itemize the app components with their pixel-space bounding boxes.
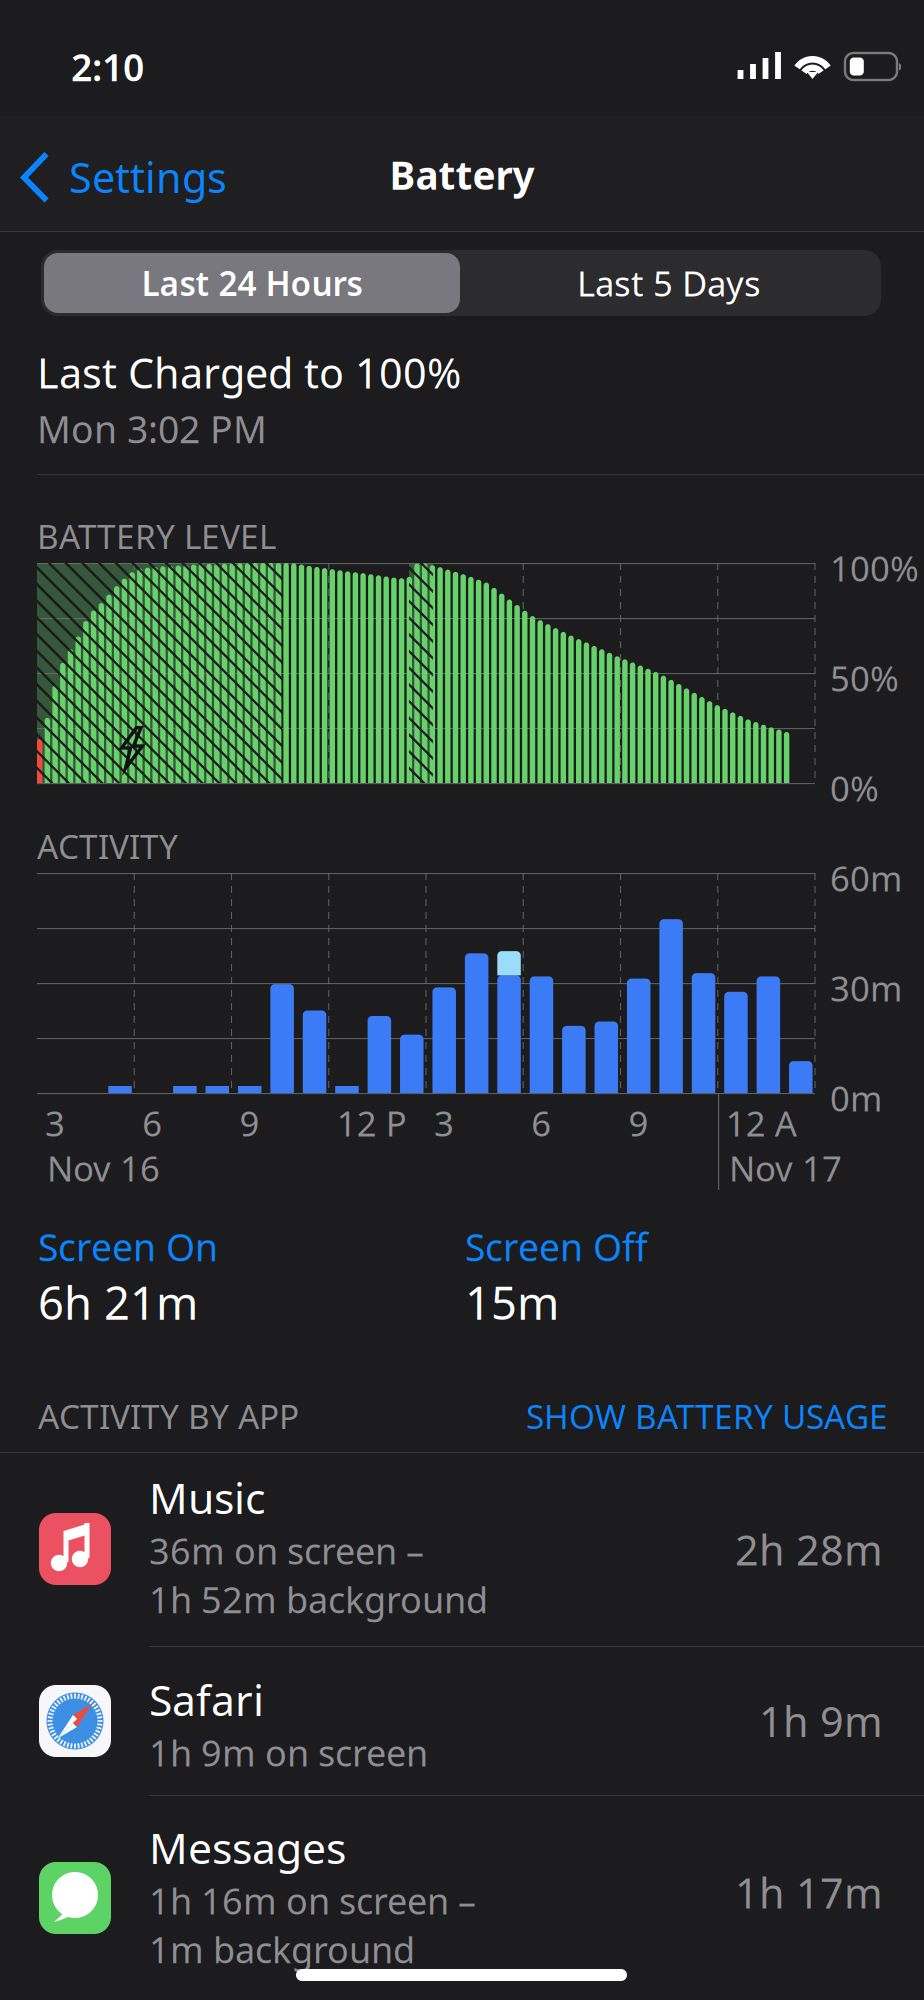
staticText: 1m background	[149, 1925, 415, 1973]
staticText: 0m	[830, 1075, 882, 1121]
staticText: Battery	[389, 149, 534, 200]
staticText: 0%	[830, 765, 879, 811]
staticText: 1h 9m on screen	[149, 1729, 428, 1776]
staticText: 1h 16m on screen –	[149, 1877, 476, 1924]
staticText: 100%	[830, 545, 919, 591]
staticText: 2h 28m	[735, 1522, 883, 1577]
staticText: BATTERY LEVEL	[37, 514, 276, 558]
staticText: 6h 21m	[38, 1272, 198, 1332]
staticText: 36m on screen –	[149, 1527, 424, 1574]
staticText: 3	[434, 1100, 454, 1146]
button[interactable]: Last 5 Days	[460, 253, 878, 313]
button[interactable]: Last 24 Hours	[44, 253, 460, 313]
button[interactable]: Settings	[19, 144, 227, 210]
staticText: 1h 9m	[759, 1694, 883, 1748]
staticText: 9	[628, 1100, 648, 1146]
staticText: 60m	[830, 855, 902, 901]
button[interactable]: Safari	[0, 1647, 924, 1795]
staticText: Nov 16	[47, 1145, 160, 1191]
staticText: 6	[142, 1100, 162, 1146]
staticText: Last 5 Days	[577, 260, 761, 306]
staticText: 12 A	[726, 1100, 797, 1146]
staticText: 12 P	[337, 1100, 407, 1146]
staticText: ACTIVITY BY APP	[38, 1394, 299, 1438]
staticText: Nov 17	[729, 1145, 842, 1191]
staticText: ACTIVITY	[37, 824, 178, 868]
staticText: 3	[45, 1100, 65, 1146]
staticText: 15m	[465, 1272, 559, 1332]
staticText: 9	[239, 1100, 259, 1146]
staticText: Last Charged to 100%	[37, 345, 461, 400]
staticText: Screen On	[38, 1222, 218, 1272]
staticText: Screen Off	[465, 1222, 648, 1272]
staticText: SHOW BATTERY USAGE	[526, 1394, 888, 1438]
staticText: Safari	[149, 1671, 264, 1728]
button[interactable]: Music	[0, 1453, 924, 1646]
staticText: Music	[149, 1469, 265, 1526]
staticText: 1h 52m background	[149, 1575, 488, 1623]
staticText: 2:10	[71, 42, 144, 92]
staticText: Settings	[69, 150, 227, 204]
staticText: 1h 17m	[735, 1865, 883, 1920]
button[interactable]: Messages	[0, 1796, 924, 1989]
staticText: Messages	[149, 1819, 346, 1876]
staticText: Last 24 Hours	[141, 261, 362, 305]
staticText: 50%	[830, 655, 899, 701]
button[interactable]: SHOW BATTERY USAGE	[526, 1394, 924, 1438]
staticText: 6	[531, 1100, 551, 1146]
staticText: 30m	[830, 965, 902, 1011]
staticText: Mon 3:02 PM	[37, 404, 267, 454]
